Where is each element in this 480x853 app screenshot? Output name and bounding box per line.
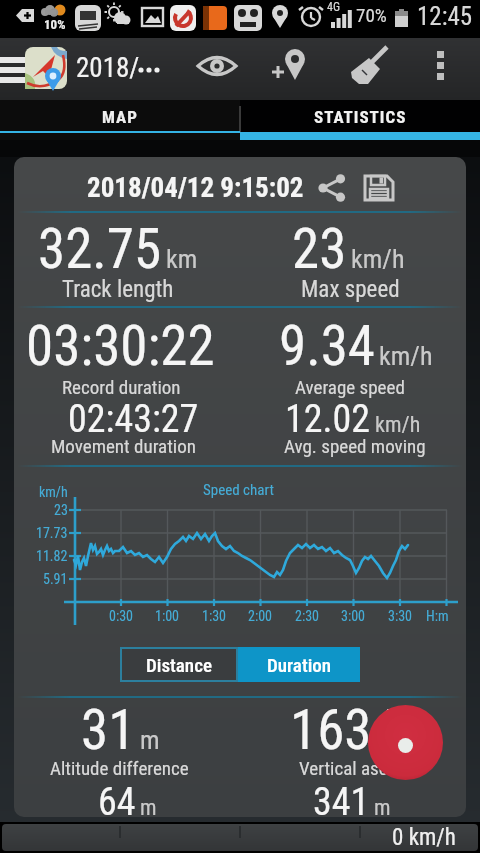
staticText: 23 xyxy=(292,217,347,281)
staticText: 02:43:27 xyxy=(68,397,199,442)
staticText: 1:30 xyxy=(202,608,227,624)
staticText: 31 xyxy=(81,698,136,762)
staticText: Altitude difference xyxy=(50,757,189,779)
button[interactable] xyxy=(346,40,398,96)
staticText: Movement duration xyxy=(51,435,196,457)
staticText: m xyxy=(140,795,157,821)
staticText: 12.02 xyxy=(285,397,371,442)
staticText: km/h xyxy=(351,244,405,274)
staticText: 0 km/h xyxy=(392,824,456,851)
staticText: 3:30 xyxy=(388,608,413,624)
staticText: 4G xyxy=(327,0,341,14)
staticText: km/h xyxy=(375,412,421,438)
staticText: Track length xyxy=(62,276,174,303)
staticText: 23 xyxy=(54,502,68,518)
button[interactable]: Duration xyxy=(238,647,360,682)
staticText: Average speed xyxy=(295,376,405,398)
staticText: 3:00 xyxy=(341,608,366,624)
staticText: 2018/04/12 9:15:02 xyxy=(87,172,304,204)
staticText: H:m xyxy=(426,608,449,624)
staticText: MAP xyxy=(102,107,138,127)
staticText: Distance xyxy=(146,654,212,676)
staticText: 2018/ xyxy=(76,52,140,84)
staticText: 17.73 xyxy=(36,525,68,541)
staticText: 12:45 xyxy=(417,2,473,31)
staticText: km xyxy=(166,244,198,274)
button[interactable]: STATISTICS xyxy=(240,100,480,140)
staticText: 64 xyxy=(98,780,136,825)
button[interactable]: MAP xyxy=(0,100,240,140)
staticText: 0:30 xyxy=(109,608,134,624)
staticText: 9.34 xyxy=(279,314,375,378)
button[interactable]: Distance xyxy=(120,647,238,682)
button[interactable] xyxy=(318,174,346,202)
button[interactable] xyxy=(363,172,395,204)
staticText: Vertical ascent xyxy=(299,757,412,779)
staticText: 03:30:22 xyxy=(26,314,215,378)
staticText: 2:00 xyxy=(248,608,273,624)
staticText: 70% xyxy=(356,4,387,26)
staticText: 11.82 xyxy=(36,548,68,564)
staticText: 1:00 xyxy=(155,608,180,624)
staticText: 1634 xyxy=(290,698,399,762)
staticText: m xyxy=(403,725,423,755)
button[interactable]: 2018/04/12 9:15:02 xyxy=(87,168,395,208)
staticText: 341 xyxy=(313,780,370,825)
staticText: Max speed xyxy=(301,276,400,303)
staticText: m xyxy=(374,795,391,821)
button[interactable] xyxy=(424,40,464,96)
button[interactable] xyxy=(368,705,443,780)
button[interactable] xyxy=(268,40,320,96)
staticText: Speed chart xyxy=(203,481,274,499)
staticText: m xyxy=(140,725,160,755)
button[interactable] xyxy=(0,38,200,100)
staticText: 2:30 xyxy=(295,608,320,624)
staticText: 5.91 xyxy=(43,571,68,587)
staticText: Record duration xyxy=(62,376,181,398)
staticText: STATISTICS xyxy=(314,107,407,127)
staticText: km/h xyxy=(379,341,433,371)
staticText: km/h xyxy=(39,484,68,500)
staticText: 32.75 xyxy=(38,217,162,281)
button[interactable] xyxy=(192,40,244,96)
staticText: Avg. speed moving xyxy=(284,435,426,457)
staticText: 10% xyxy=(44,17,66,32)
staticText: Duration xyxy=(267,654,332,676)
